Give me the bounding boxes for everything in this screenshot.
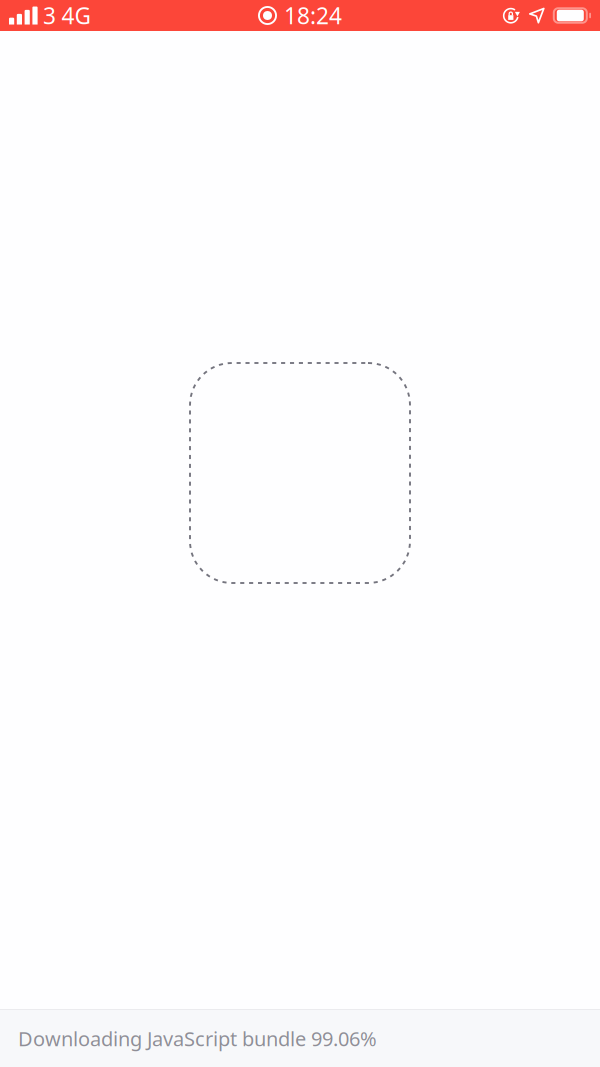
- staticText: Downloading JavaScript bundle 99.06%: [18, 1025, 377, 1052]
- staticText: 4G: [62, 0, 92, 30]
- staticText: 18:24: [284, 0, 342, 30]
- button[interactable]: App icon placeholder: [190, 363, 410, 583]
- staticText: 3: [43, 0, 56, 30]
